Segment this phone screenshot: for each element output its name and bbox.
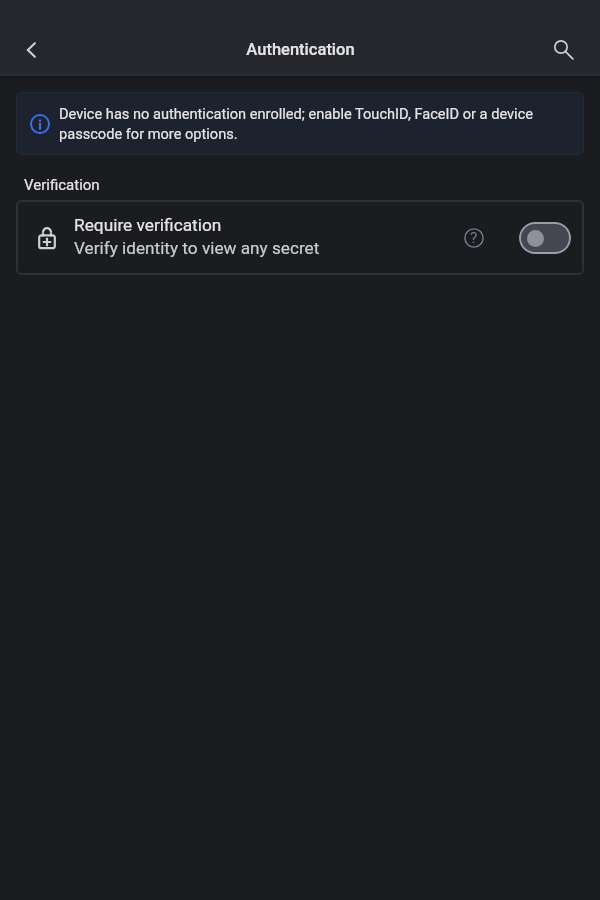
button[interactable]: Back: [7, 26, 55, 74]
button[interactable]: Search: [538, 25, 586, 73]
staticText: Device has no authentication enrolled; e…: [59, 105, 571, 142]
button[interactable]: Help: [457, 221, 491, 255]
staticText: ?: [470, 229, 478, 247]
button[interactable]: Require verification: [16, 200, 584, 275]
button[interactable]: Require verification: [519, 222, 571, 254]
button[interactable]: Device has no authentication enrolled; e…: [16, 92, 584, 155]
staticText: Verification: [24, 176, 100, 194]
staticText: Authentication: [246, 40, 355, 59]
staticText: Require verification: [74, 215, 222, 235]
staticText: Verify identity to view any secret: [74, 238, 320, 258]
